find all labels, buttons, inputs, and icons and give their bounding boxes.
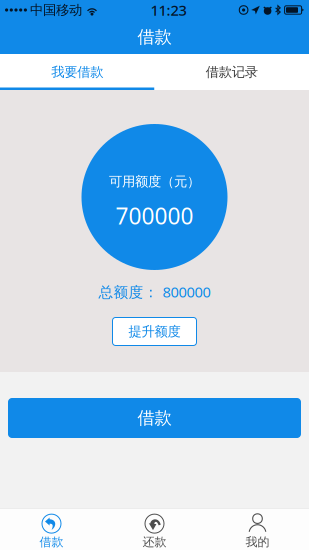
- button[interactable]: 借款记录: [154, 54, 309, 90]
- staticText: 11:23: [151, 0, 187, 20]
- staticText: 我要借款: [51, 64, 103, 80]
- staticText: 借款记录: [206, 64, 258, 80]
- staticText: 借款: [137, 407, 171, 429]
- staticText: 总额度： 800000: [98, 282, 210, 301]
- button[interactable]: 还款: [103, 505, 206, 550]
- button[interactable]: 借款: [8, 398, 301, 438]
- staticText: 我的: [245, 535, 269, 549]
- staticText: 可用额度（元）: [109, 173, 200, 190]
- button[interactable]: 提升额度: [112, 317, 196, 345]
- button[interactable]: 我要借款: [0, 54, 154, 90]
- staticText: 借款: [137, 26, 171, 48]
- staticText: 700000: [115, 201, 193, 231]
- button[interactable]: 我的: [206, 505, 309, 550]
- staticText: 中国移动: [30, 2, 82, 18]
- button[interactable]: 借款: [0, 505, 103, 550]
- staticText: 还款: [142, 535, 166, 549]
- staticText: 提升额度: [128, 323, 180, 340]
- staticText: 借款: [39, 535, 63, 549]
